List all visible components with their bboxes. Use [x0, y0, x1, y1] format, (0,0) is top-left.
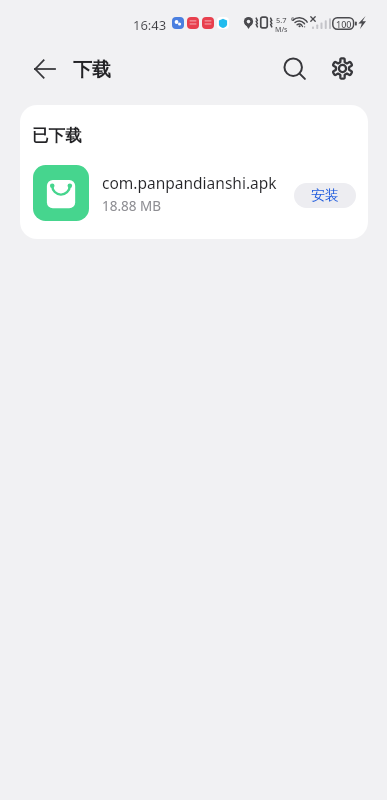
button[interactable]: Settings — [320, 46, 364, 90]
staticText: 下载 — [73, 58, 111, 82]
staticText: M/s — [275, 25, 288, 35]
staticText: 安装 — [311, 187, 339, 205]
button[interactable]: 安装 — [294, 183, 356, 208]
staticText: 已下载 — [32, 125, 82, 146]
staticText: 100 — [336, 18, 352, 30]
staticText: 16:43 — [133, 16, 167, 34]
staticText: com.panpandianshi.apk — [102, 172, 277, 193]
button[interactable]: Search — [273, 47, 317, 91]
button[interactable]: Back — [22, 47, 66, 91]
staticText: 6 — [291, 15, 295, 23]
staticText: 5.7 — [276, 15, 287, 25]
button[interactable]: com.panpandianshi.apk — [20, 159, 368, 231]
staticText: 18.88 MB — [102, 197, 162, 215]
